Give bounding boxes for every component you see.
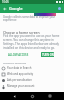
staticText: TURN ON bbox=[42, 53, 54, 57]
button[interactable]: Your data in Search bbox=[0, 65, 64, 71]
staticText: Web and app activity bbox=[7, 72, 34, 76]
staticText: ACCOUNT SETTINGS bbox=[3, 61, 27, 64]
staticText: Manage your account bbox=[7, 84, 35, 88]
staticText: Pick the app you want to use as your hom… bbox=[3, 34, 60, 50]
staticText: Google bbox=[9, 6, 23, 11]
button[interactable]: Recent apps bbox=[46, 92, 54, 100]
staticText: 10:05 bbox=[2, 0, 9, 4]
staticText: ALLOW ACCESS bbox=[8, 53, 29, 57]
button[interactable]: Ads personalisation bbox=[0, 77, 64, 83]
button[interactable]: Manage your account bbox=[0, 83, 64, 89]
button[interactable]: Back bbox=[10, 92, 18, 100]
button[interactable]: Account bbox=[55, 4, 64, 13]
button[interactable]: TURN ON bbox=[41, 52, 54, 57]
staticText: Ads personalisation bbox=[7, 78, 32, 82]
staticText: Your data in Search bbox=[7, 66, 32, 70]
staticText: Choose a home screen bbox=[3, 30, 40, 35]
button[interactable]: Web and app activity bbox=[0, 71, 64, 77]
staticText: Google collects some data to improve you… bbox=[3, 15, 61, 21]
button[interactable]: ALLOW ACCESS bbox=[7, 52, 30, 58]
button[interactable]: Back bbox=[0, 4, 9, 13]
button[interactable]: Home bbox=[28, 92, 36, 100]
